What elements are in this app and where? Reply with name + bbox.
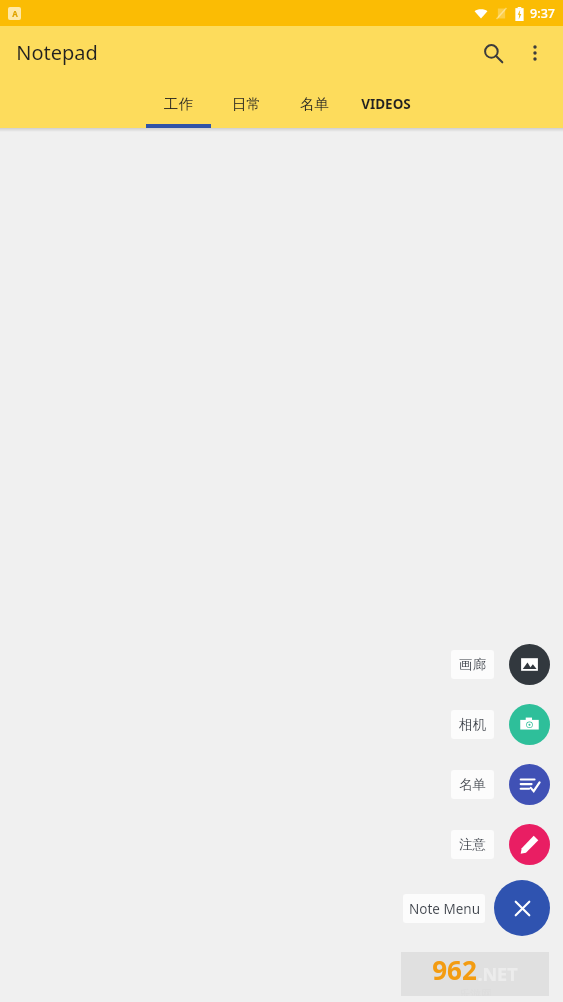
staticText: VIDEOS: [361, 95, 411, 113]
button[interactable]: 相机: [451, 710, 494, 739]
button[interactable]: 日常: [212, 79, 280, 128]
staticText: 名单: [459, 776, 486, 793]
button[interactable]: Search: [471, 31, 515, 75]
staticText: 日常: [232, 95, 261, 113]
staticText: Note Menu: [409, 900, 480, 918]
staticText: 962: [432, 952, 477, 987]
button[interactable]: 工作: [144, 79, 212, 128]
staticText: 相机: [459, 716, 486, 733]
button[interactable]: 相机: [509, 704, 550, 745]
staticText: A: [12, 8, 18, 19]
button[interactable]: Note Menu: [403, 894, 485, 923]
button[interactable]: More options: [515, 33, 555, 73]
button[interactable]: 画廊: [451, 650, 494, 679]
staticText: .NET: [477, 962, 518, 987]
staticText: 9:37: [530, 5, 555, 22]
button[interactable]: 名单: [280, 79, 348, 128]
button[interactable]: 名单: [509, 764, 550, 805]
button[interactable]: Close note menu: [494, 880, 550, 936]
button[interactable]: 画廊: [509, 644, 550, 685]
button[interactable]: 注意: [451, 830, 494, 859]
staticText: 注意: [459, 836, 486, 853]
staticText: Notepad: [16, 39, 98, 66]
button[interactable]: 名单: [451, 770, 494, 799]
button[interactable]: 注意: [509, 824, 550, 865]
staticText: 名单: [300, 95, 329, 113]
staticText: 画廊: [459, 656, 486, 673]
staticText: 工作: [164, 95, 193, 113]
button[interactable]: VIDEOS: [348, 79, 424, 128]
